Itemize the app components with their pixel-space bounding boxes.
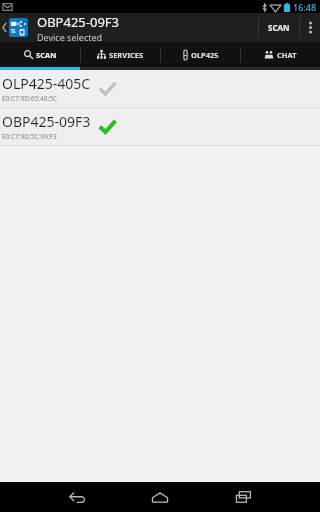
button[interactable]: OLP425-405C (0, 70, 320, 107)
button[interactable]: More options (300, 13, 320, 42)
button[interactable]: OBP425-09F3 (0, 108, 320, 145)
staticText: SCAN (268, 22, 290, 33)
button[interactable]: SCAN (259, 13, 299, 42)
button[interactable]: SCAN (0, 42, 80, 67)
staticText: Device selected (37, 31, 103, 42)
staticText: E0:C7:9D:65:40:5C (2, 94, 58, 103)
staticText: OLP425-405C (2, 74, 91, 93)
staticText: OLP425 (191, 50, 219, 60)
staticText: CHAT (277, 50, 297, 60)
staticText: 16:48 (293, 1, 317, 13)
button[interactable]: Home (143, 484, 177, 510)
staticText: OBP425-09F3 (2, 112, 91, 131)
button[interactable]: CHAT (241, 42, 320, 67)
staticText: SERVICES (109, 50, 144, 60)
staticText: OBP425-09F3 (37, 13, 120, 31)
staticText: SCAN (36, 50, 57, 60)
button[interactable]: OLP425 (161, 42, 240, 67)
staticText: E0:C7:9D:5C:09:F3 (2, 132, 57, 141)
button[interactable]: Recent apps (226, 484, 260, 510)
button[interactable]: Back (60, 484, 94, 510)
button[interactable]: SERVICES (81, 42, 160, 67)
button[interactable]: Navigate up (0, 13, 32, 42)
